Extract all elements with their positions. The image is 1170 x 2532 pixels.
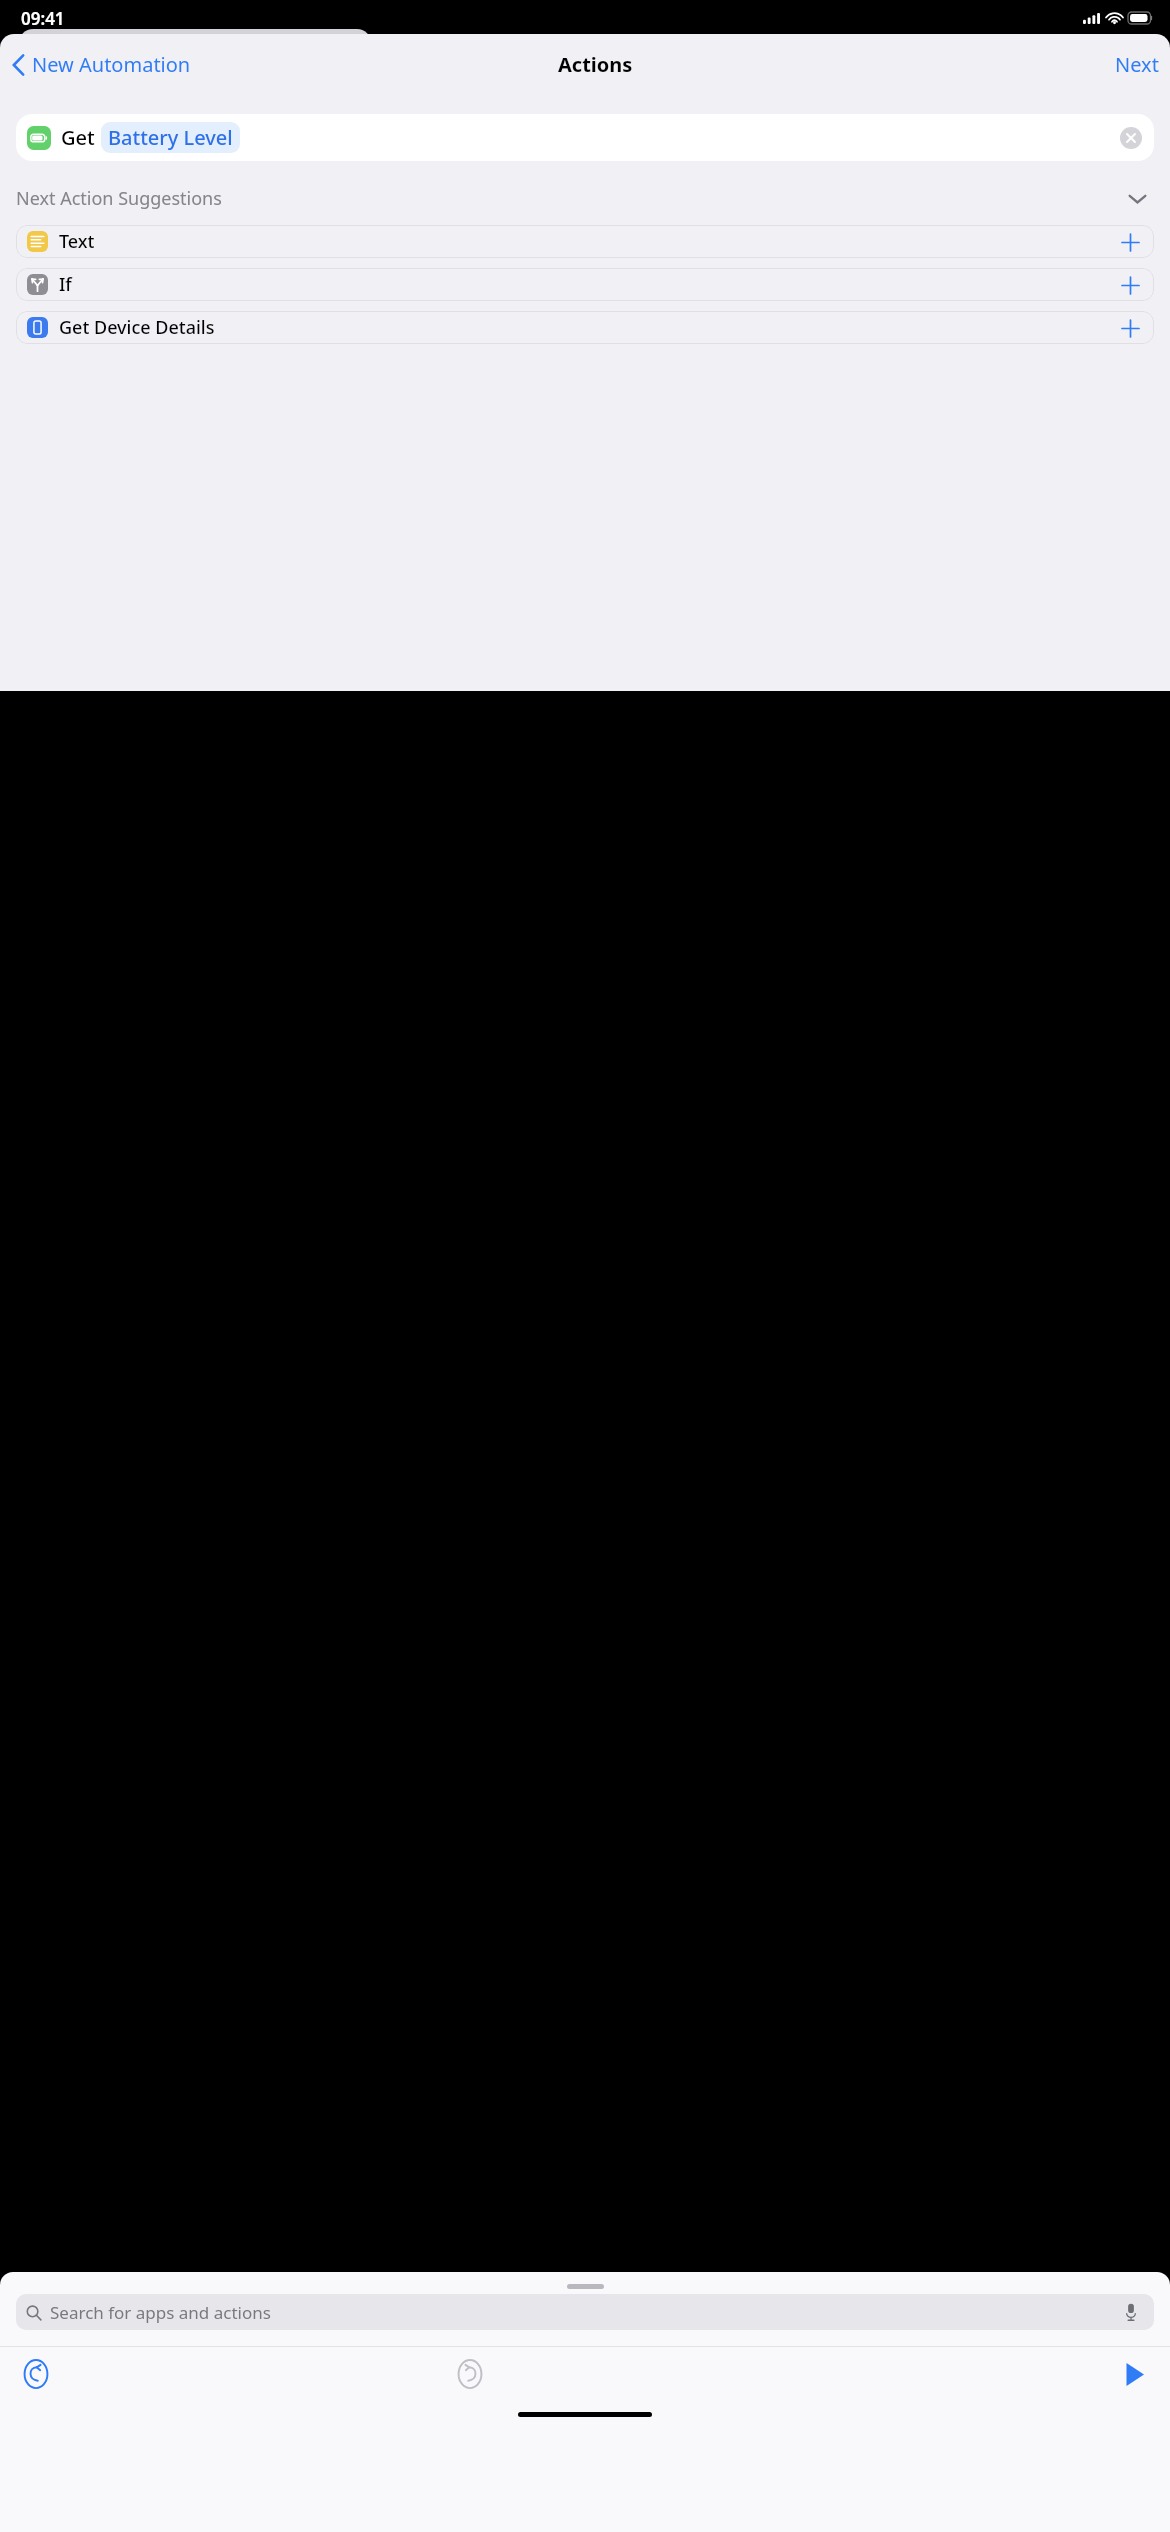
button[interactable]: Text [16,225,1154,258]
button[interactable]: Next [1104,46,1170,83]
staticText: Text [59,229,95,254]
button[interactable]: Redo [452,2356,488,2392]
button[interactable]: New Automation [0,47,197,82]
staticText: Search for apps and actions [50,2301,271,2324]
staticText: 09:41 [21,7,65,30]
button[interactable]: Add If [1119,274,1141,296]
button[interactable]: Add Get Device Details [1119,317,1141,339]
staticText: Get Device Details [59,315,215,340]
button[interactable]: If [16,268,1154,301]
staticText: Battery Level [108,124,233,151]
button[interactable]: Search for apps and actions [16,2294,1154,2330]
button[interactable]: Next Action Suggestions [16,186,1154,211]
staticText: New Automation [32,51,191,78]
button[interactable]: Undo [18,2356,54,2392]
button[interactable]: Remove action [1120,127,1142,149]
button[interactable]: Voice search [1120,2301,1142,2323]
button[interactable]: Get Device Details [16,311,1154,344]
button[interactable]: Run shortcut [1116,2356,1152,2392]
button[interactable]: Add Text [1119,231,1141,253]
button[interactable]: Get [16,114,1154,161]
button[interactable]: Battery Level [101,122,240,153]
staticText: Next Action Suggestions [16,186,222,211]
staticText: Actions [558,51,633,78]
staticText: Next [1115,51,1159,78]
staticText: If [59,272,72,297]
staticText: Get [61,124,95,151]
